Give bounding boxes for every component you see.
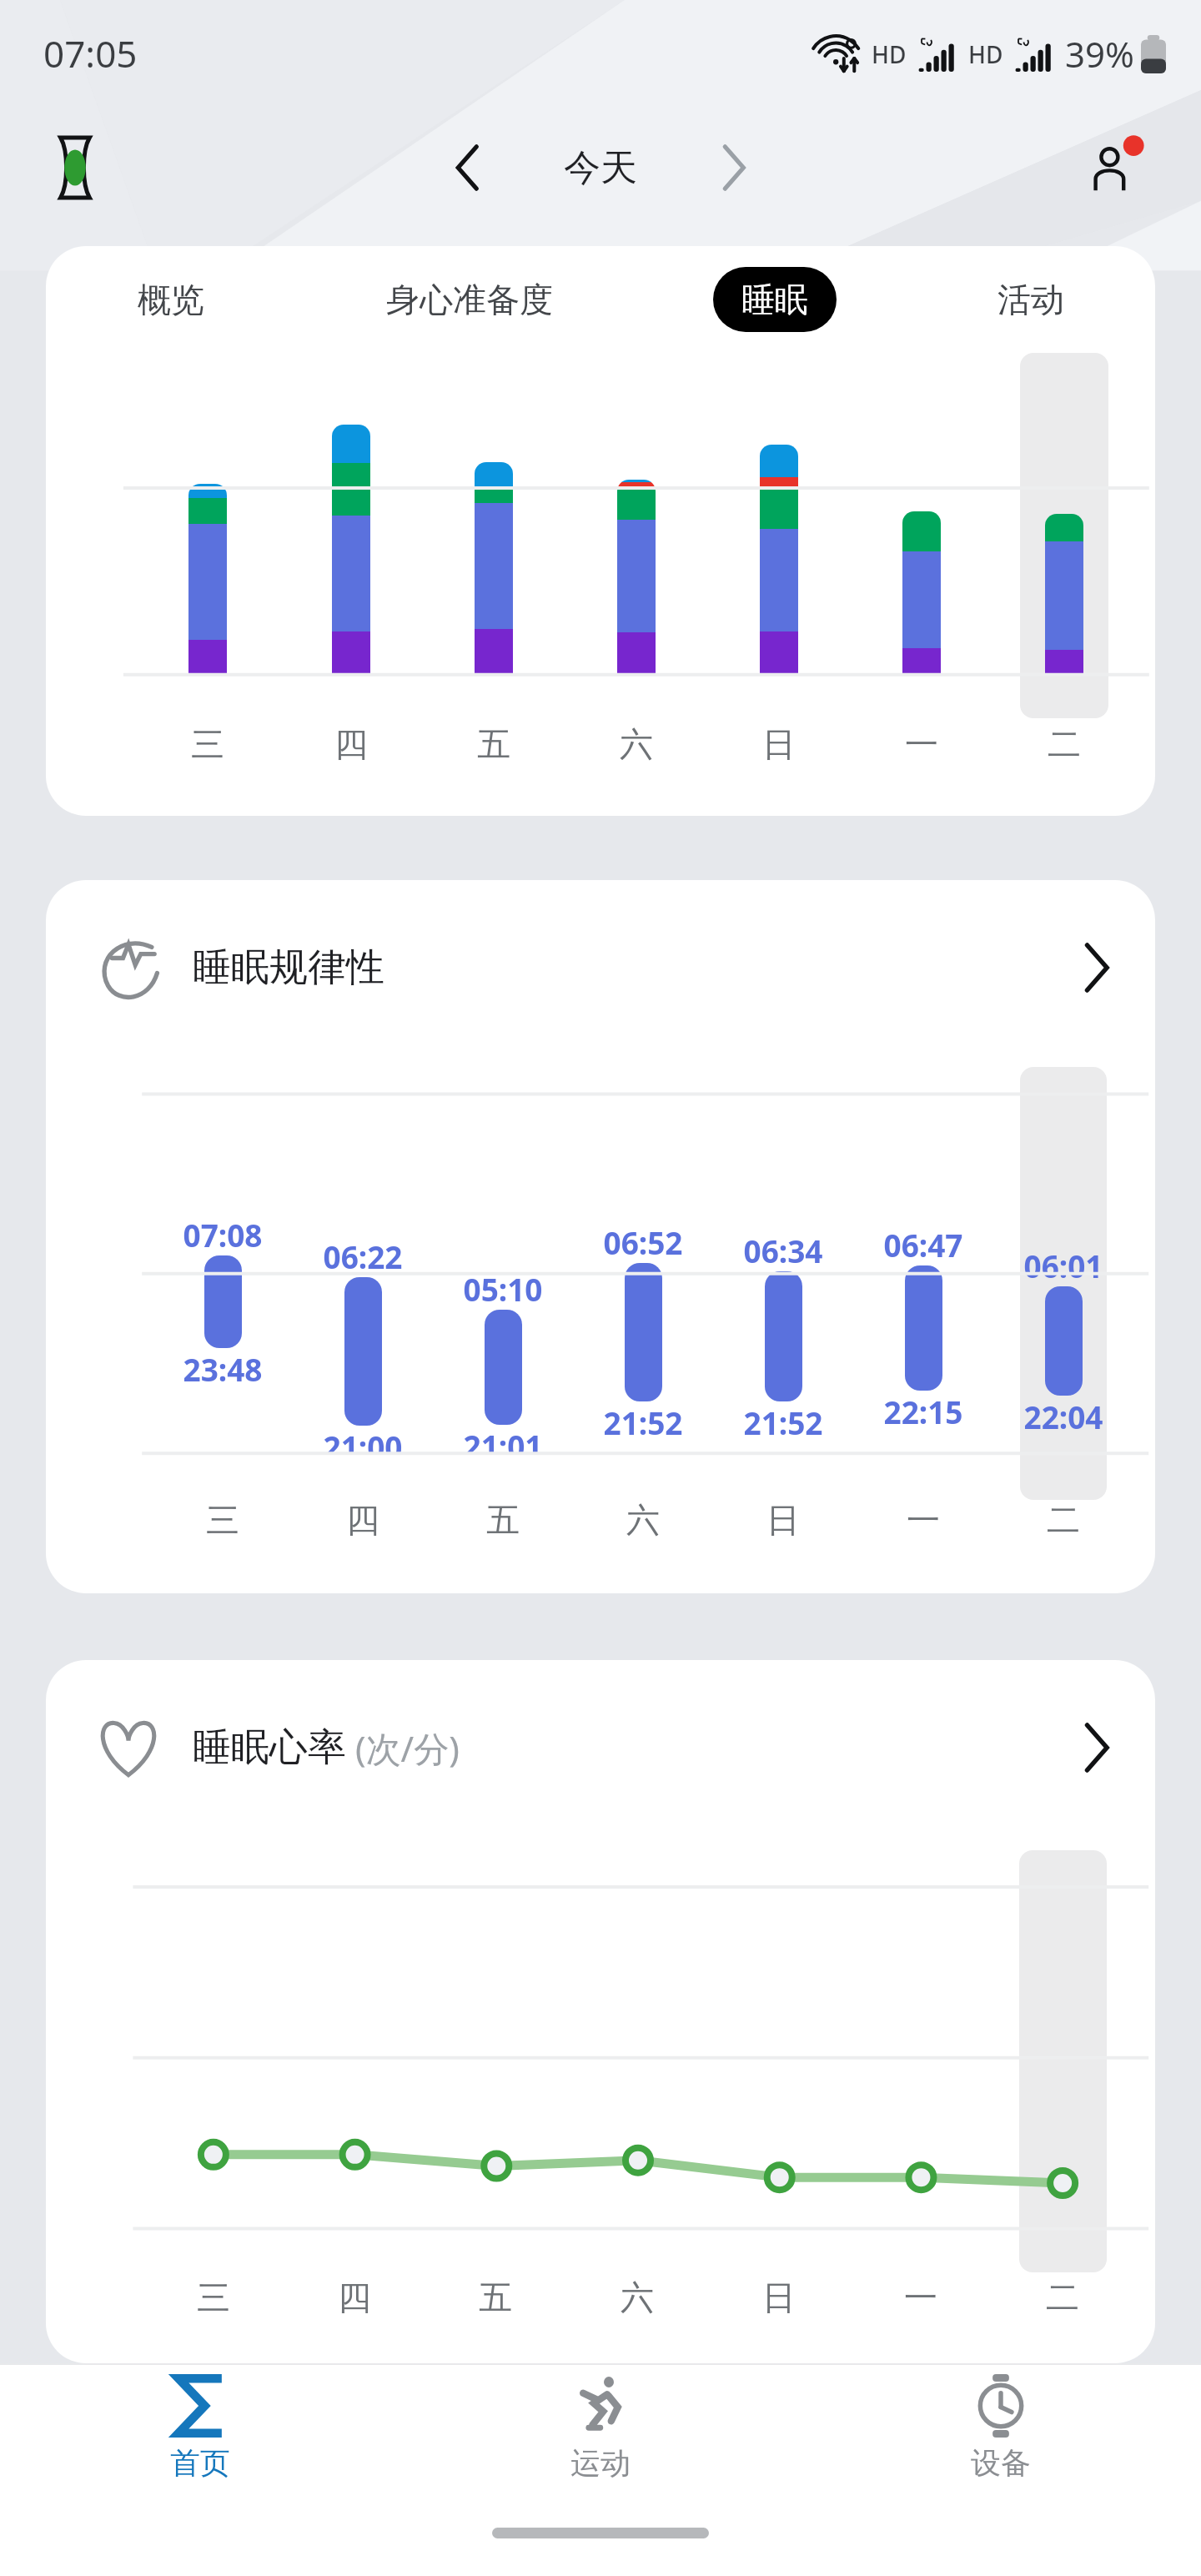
staticText: 六 — [620, 723, 653, 765]
staticText: 21:00 — [323, 1426, 403, 1453]
staticText: 五 — [479, 2277, 512, 2318]
button[interactable]: 后一天 — [688, 122, 780, 214]
button[interactable]: 个人中心 — [1071, 124, 1158, 211]
staticText: 活动 — [997, 279, 1064, 320]
staticText: 四 — [338, 2277, 371, 2318]
staticText: 睡眠心率 — [193, 1723, 346, 1772]
staticText: 日 — [762, 723, 796, 765]
staticText: 五 — [477, 723, 510, 765]
staticText: 06:47 — [883, 1224, 963, 1265]
staticText: (次/分) — [346, 1724, 460, 1772]
staticText: 运动 — [570, 2444, 631, 2482]
staticText: 身心准备度 — [386, 279, 553, 320]
staticText: 五 — [486, 1499, 520, 1541]
button[interactable]: 睡眠心率 — [46, 1660, 1155, 1835]
staticText: 四 — [346, 1499, 379, 1541]
staticText: 06:22 — [323, 1235, 403, 1277]
button[interactable]: 睡眠 — [713, 267, 837, 332]
button[interactable]: 我的手表 — [35, 128, 115, 208]
staticText: 概览 — [138, 279, 204, 320]
staticText: 一 — [904, 2277, 937, 2318]
staticText: 三 — [197, 2277, 230, 2318]
staticText: 21:52 — [603, 1401, 683, 1443]
staticText: 四 — [334, 723, 368, 765]
staticText: 22:04 — [1023, 1396, 1103, 1437]
staticText: 首页 — [170, 2444, 230, 2482]
staticText: 一 — [905, 723, 938, 765]
staticText: 06:52 — [603, 1221, 683, 1263]
staticText: HD — [968, 38, 1003, 70]
button[interactable]: 前一天 — [421, 122, 513, 214]
staticText: 日 — [766, 1499, 800, 1541]
staticText: 一 — [907, 1499, 940, 1541]
staticText: 三 — [206, 1499, 239, 1541]
button[interactable]: 今天 — [513, 122, 688, 214]
staticText: 二 — [1048, 723, 1081, 765]
staticText: 二 — [1047, 1499, 1080, 1541]
staticText: 睡眠 — [741, 279, 808, 320]
button[interactable]: 身心准备度 — [368, 264, 571, 335]
staticText: 06:34 — [743, 1230, 823, 1271]
staticText: 六 — [626, 1499, 660, 1541]
button[interactable]: 概览 — [119, 264, 223, 335]
button[interactable]: 活动 — [979, 264, 1083, 335]
staticText: 07:05 — [43, 28, 138, 78]
button[interactable]: 设备 — [801, 2365, 1201, 2490]
staticText: HD — [872, 38, 907, 70]
button[interactable]: 睡眠规律性 — [46, 880, 1155, 1055]
staticText: 22:15 — [883, 1391, 963, 1432]
staticText: 05:10 — [463, 1268, 543, 1310]
staticText: 睡眠规律性 — [193, 943, 384, 992]
staticText: 39% — [1065, 30, 1134, 78]
staticText: 21:52 — [743, 1401, 823, 1443]
staticText: 六 — [621, 2277, 654, 2318]
staticText: 设备 — [971, 2444, 1031, 2482]
staticText: 06:01 — [1023, 1245, 1103, 1286]
staticText: 二 — [1046, 2277, 1079, 2318]
staticText: 23:48 — [183, 1348, 263, 1390]
staticText: 07:08 — [183, 1214, 263, 1255]
staticText: 今天 — [564, 145, 637, 191]
staticText: 21:01 — [463, 1425, 543, 1453]
button[interactable]: 运动 — [400, 2365, 801, 2490]
staticText: 日 — [762, 2277, 796, 2318]
staticText: 三 — [191, 723, 224, 765]
button[interactable]: 首页 — [0, 2365, 400, 2490]
